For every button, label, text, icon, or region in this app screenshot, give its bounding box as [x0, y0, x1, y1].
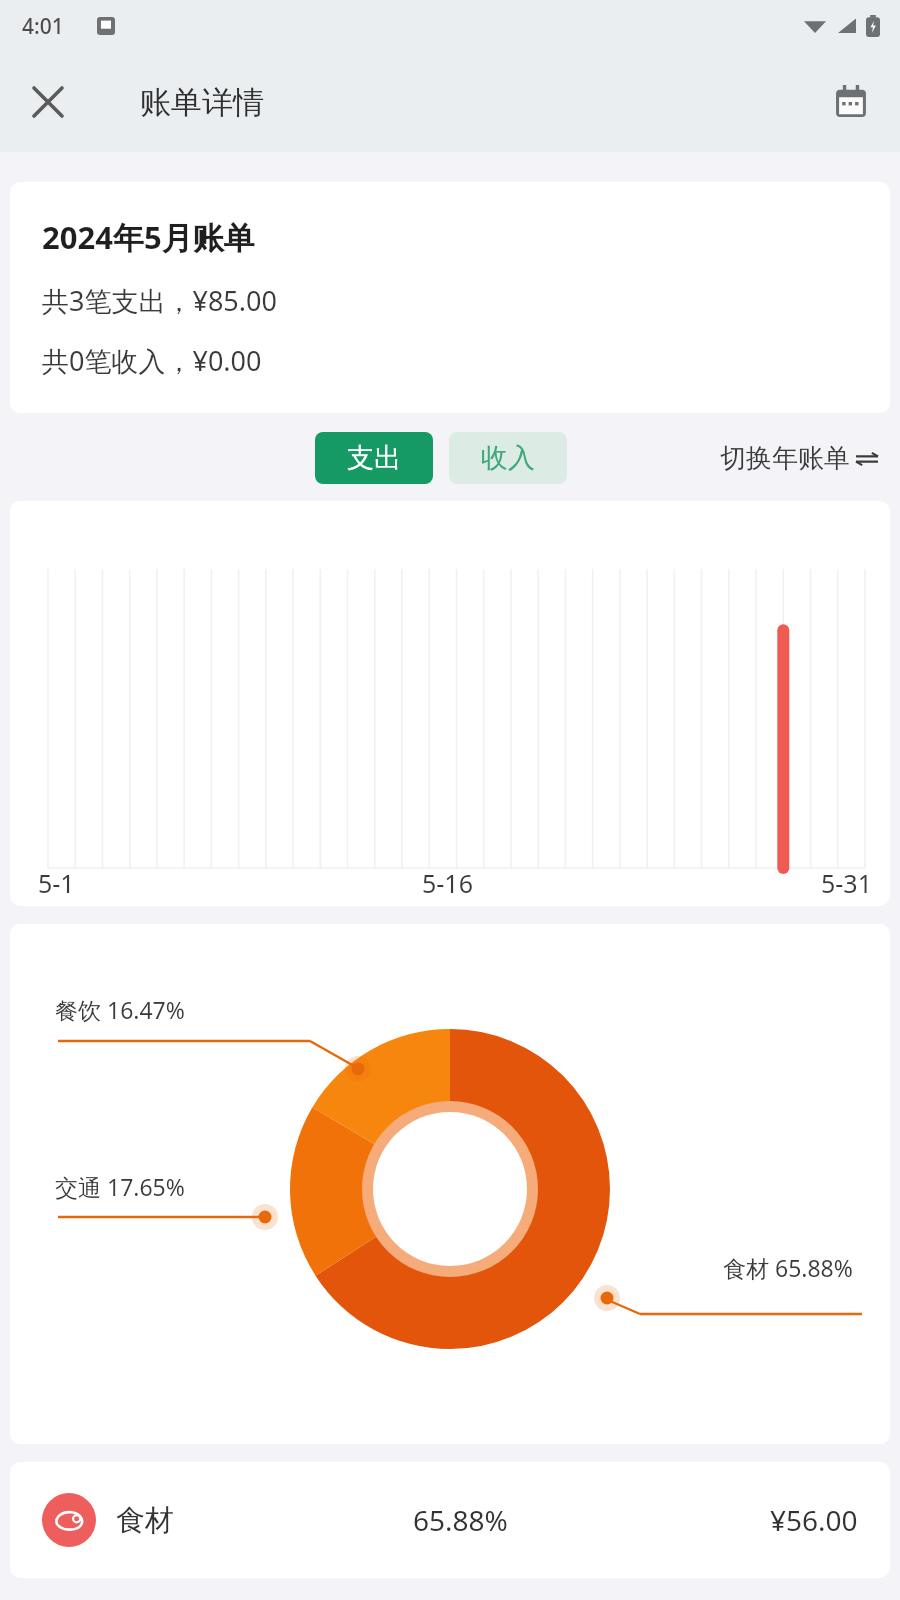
button[interactable]: Calendar [824, 75, 878, 129]
staticText: ¥56.00 [770, 1501, 858, 1539]
staticText: 切换年账单 [720, 442, 850, 475]
button[interactable]: Close [22, 76, 74, 128]
button[interactable]: 收入 [449, 432, 567, 484]
button[interactable]: 食材 [10, 1462, 890, 1578]
button[interactable]: 支出 [315, 432, 433, 484]
staticText: 收入 [481, 441, 535, 475]
button[interactable]: 切换年账单 [720, 442, 900, 475]
staticText: 账单详情 [140, 83, 264, 122]
button[interactable]: 餐饮 16.47% [10, 924, 890, 1444]
staticText: 5-16 [422, 866, 473, 900]
staticText: 4:01 [22, 12, 64, 41]
button[interactable]: 5-1 [10, 501, 890, 906]
staticText: 餐饮 16.47% [55, 994, 185, 1025]
staticText: 食材 65.88% [723, 1252, 853, 1283]
staticText: 5-31 [821, 866, 872, 900]
staticText: 食材 [116, 1502, 174, 1539]
staticText: 65.88% [413, 1501, 508, 1539]
staticText: 2024年5月账单 [42, 216, 255, 258]
staticText: 共3笔支出，¥85.00 [42, 282, 277, 319]
staticText: 共0笔收入，¥0.00 [42, 342, 262, 379]
staticText: 交通 17.65% [55, 1171, 185, 1202]
staticText: 5-1 [38, 866, 75, 900]
button[interactable]: 2024年5月账单 [10, 182, 890, 413]
staticText: 支出 [347, 441, 401, 475]
